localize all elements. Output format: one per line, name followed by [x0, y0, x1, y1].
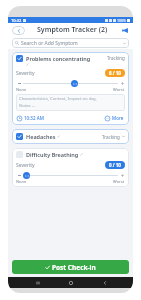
button[interactable]: Toggle symptom: [16, 151, 23, 158]
button[interactable]: Increase: [119, 172, 125, 178]
staticText: Symptom Tracker (2): [37, 25, 108, 35]
button[interactable]: Toggle symptom: [12, 52, 129, 125]
staticText: Severity: [16, 162, 35, 169]
button[interactable]: Search or Add Symptom: [12, 38, 129, 48]
staticText: Search or Add Symptom: [21, 40, 78, 47]
button[interactable]: Announcement: [121, 26, 129, 34]
staticText: Difficulty Breathing: [26, 151, 79, 158]
staticText: None: [16, 87, 27, 92]
staticText: None: [16, 179, 27, 184]
staticText: 100%: [117, 18, 126, 23]
staticText: 0 / 10: [109, 162, 121, 168]
staticText: Tracking: [102, 134, 120, 140]
button[interactable]: Characteristics, Context, Impact on day,…: [16, 94, 125, 111]
button[interactable]: Home: [66, 278, 75, 287]
button[interactable]: Toggle symptom: [12, 148, 129, 187]
button[interactable]: Decrease: [16, 80, 22, 86]
button[interactable]: Toggle symptom: [16, 133, 23, 140]
staticText: Post Check-in: [52, 263, 96, 272]
button[interactable]: 10:32 AM: [16, 114, 45, 122]
button[interactable]: Back: [12, 26, 25, 35]
button[interactable]: Increase: [119, 80, 125, 86]
staticText: 10:32: [11, 18, 22, 23]
staticText: Problems concentrating: [26, 55, 91, 62]
staticText: Headaches: [26, 133, 56, 140]
staticText: Worst: [113, 87, 125, 92]
button[interactable]: Back: [100, 278, 109, 287]
staticText: More: [112, 115, 124, 121]
staticText: Tracking: [107, 55, 125, 61]
button[interactable]: Toggle symptom: [12, 129, 129, 144]
button[interactable]: Severity slider: [71, 80, 78, 87]
button[interactable]: Decrease: [16, 172, 22, 178]
staticText: 6 / 10: [109, 70, 121, 76]
button[interactable]: More: [104, 114, 125, 122]
button[interactable]: Recents: [33, 278, 42, 287]
staticText: 10:32 AM: [24, 115, 44, 121]
staticText: Worst: [113, 179, 125, 184]
button[interactable]: Toggle symptom: [16, 55, 23, 62]
staticText: Characteristics, Context, Impact on day,…: [19, 96, 97, 108]
button[interactable]: Post Check-in: [12, 260, 129, 274]
staticText: Severity: [16, 70, 35, 77]
button[interactable]: Severity slider: [23, 172, 30, 179]
